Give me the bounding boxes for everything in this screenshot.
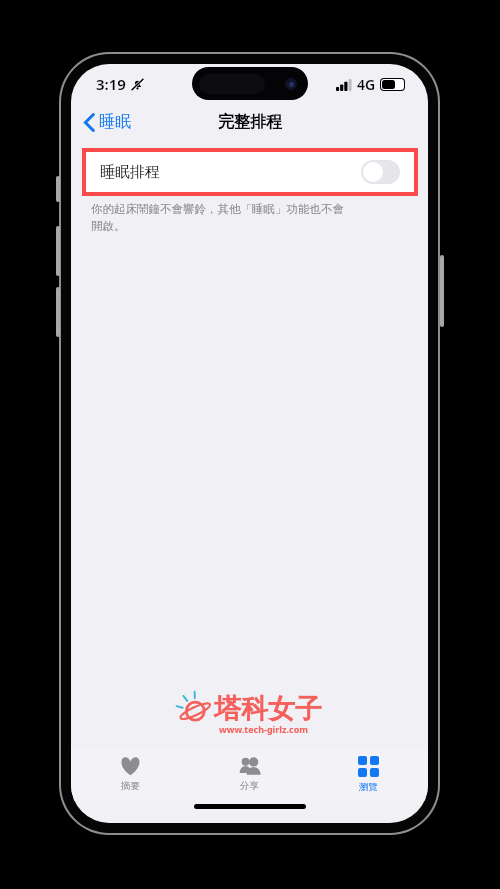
staticText: 塔科女子	[214, 692, 322, 726]
staticText: 睡眠	[99, 112, 131, 132]
staticText: 睡眠排程	[100, 163, 361, 182]
staticText: 4G	[357, 75, 376, 94]
button[interactable]: 睡眠	[71, 107, 141, 137]
staticText: www.tech-girlz.com	[219, 723, 309, 735]
staticText: 你的起床鬧鐘不會響鈴，其他「睡眠」功能也不會	[91, 202, 344, 216]
staticText: 開啟。	[91, 219, 126, 233]
staticText: 3:19	[96, 74, 126, 94]
button[interactable]: 分享	[190, 747, 309, 801]
staticText: 瀏覽	[359, 781, 378, 793]
button[interactable]: 摘要	[71, 747, 190, 801]
button[interactable]: 睡眠排程	[86, 152, 414, 192]
staticText: 完整排程	[218, 112, 282, 132]
button[interactable]: 瀏覽	[309, 747, 428, 801]
button[interactable]: Sleep schedule toggle, off	[361, 160, 400, 184]
staticText: 摘要	[121, 780, 140, 792]
staticText: 分享	[240, 780, 259, 792]
